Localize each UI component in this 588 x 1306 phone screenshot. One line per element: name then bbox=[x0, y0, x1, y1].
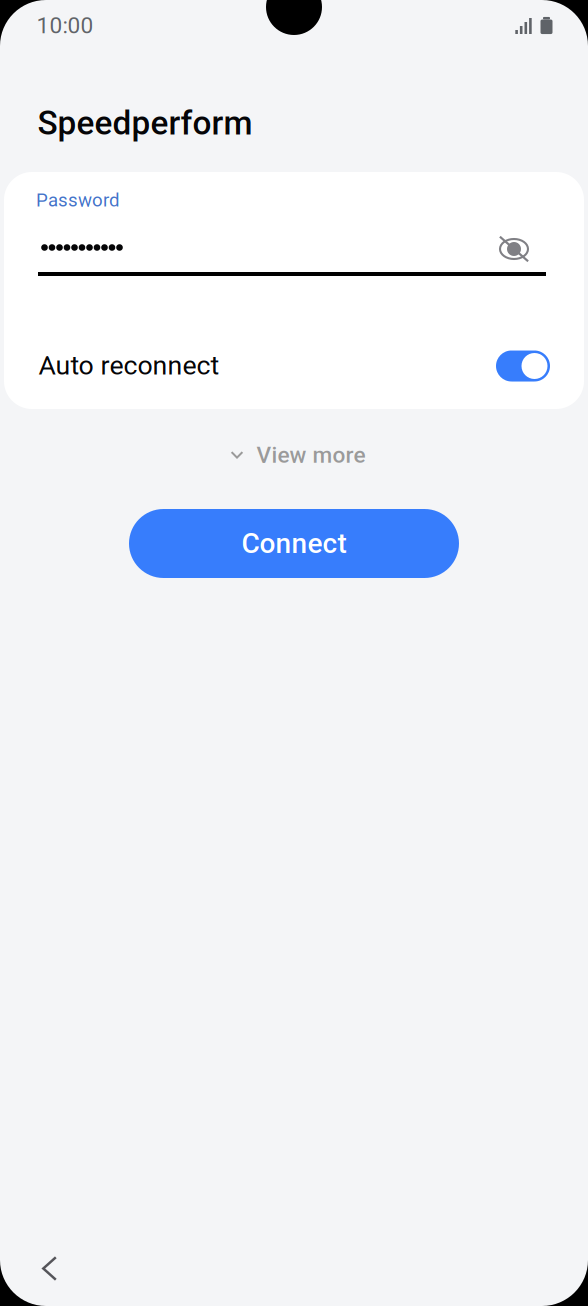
button[interactable]: Show password bbox=[490, 227, 537, 270]
button[interactable]: Connect bbox=[129, 509, 459, 578]
staticText: View more bbox=[256, 442, 365, 468]
staticText: Auto reconnect bbox=[38, 350, 219, 381]
staticText: Password bbox=[36, 189, 120, 211]
button[interactable]: View more bbox=[214, 428, 381, 482]
staticText: 10:00 bbox=[36, 12, 93, 39]
button[interactable]: Auto reconnect bbox=[489, 343, 557, 388]
button[interactable]: Back bbox=[28, 1242, 71, 1295]
staticText: Speedperform bbox=[37, 103, 252, 143]
staticText: Connect bbox=[241, 527, 346, 560]
